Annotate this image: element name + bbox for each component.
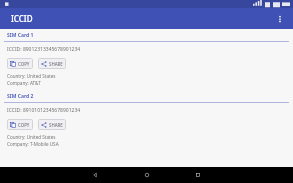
button[interactable]: SHARE: [38, 119, 66, 130]
staticText: ICCID: 89101012345678901234: [7, 107, 81, 114]
staticText: ICCID: [11, 13, 33, 24]
button[interactable]: COPY: [7, 58, 33, 69]
staticText: Company: AT&T: [7, 80, 41, 86]
staticText: SIM Card 2: [7, 93, 34, 100]
button[interactable]: Back: [88, 168, 102, 182]
staticText: SIM Card 1: [7, 32, 34, 39]
button[interactable]: SHARE: [38, 58, 66, 69]
staticText: Country: United States: [7, 73, 56, 79]
staticText: SHARE: [49, 61, 63, 67]
button[interactable]: More options: [271, 10, 289, 28]
staticText: Company: T-Mobile USA: [7, 141, 59, 147]
staticText: Country: United States: [7, 134, 56, 140]
button[interactable]: Recent apps: [191, 168, 205, 182]
staticText: SHARE: [49, 122, 63, 128]
staticText: COPY: [18, 61, 30, 67]
button[interactable]: Home: [140, 168, 154, 182]
button[interactable]: COPY: [7, 119, 33, 130]
staticText: ICCID: 89012313345678901234: [7, 46, 81, 53]
staticText: COPY: [18, 122, 30, 128]
